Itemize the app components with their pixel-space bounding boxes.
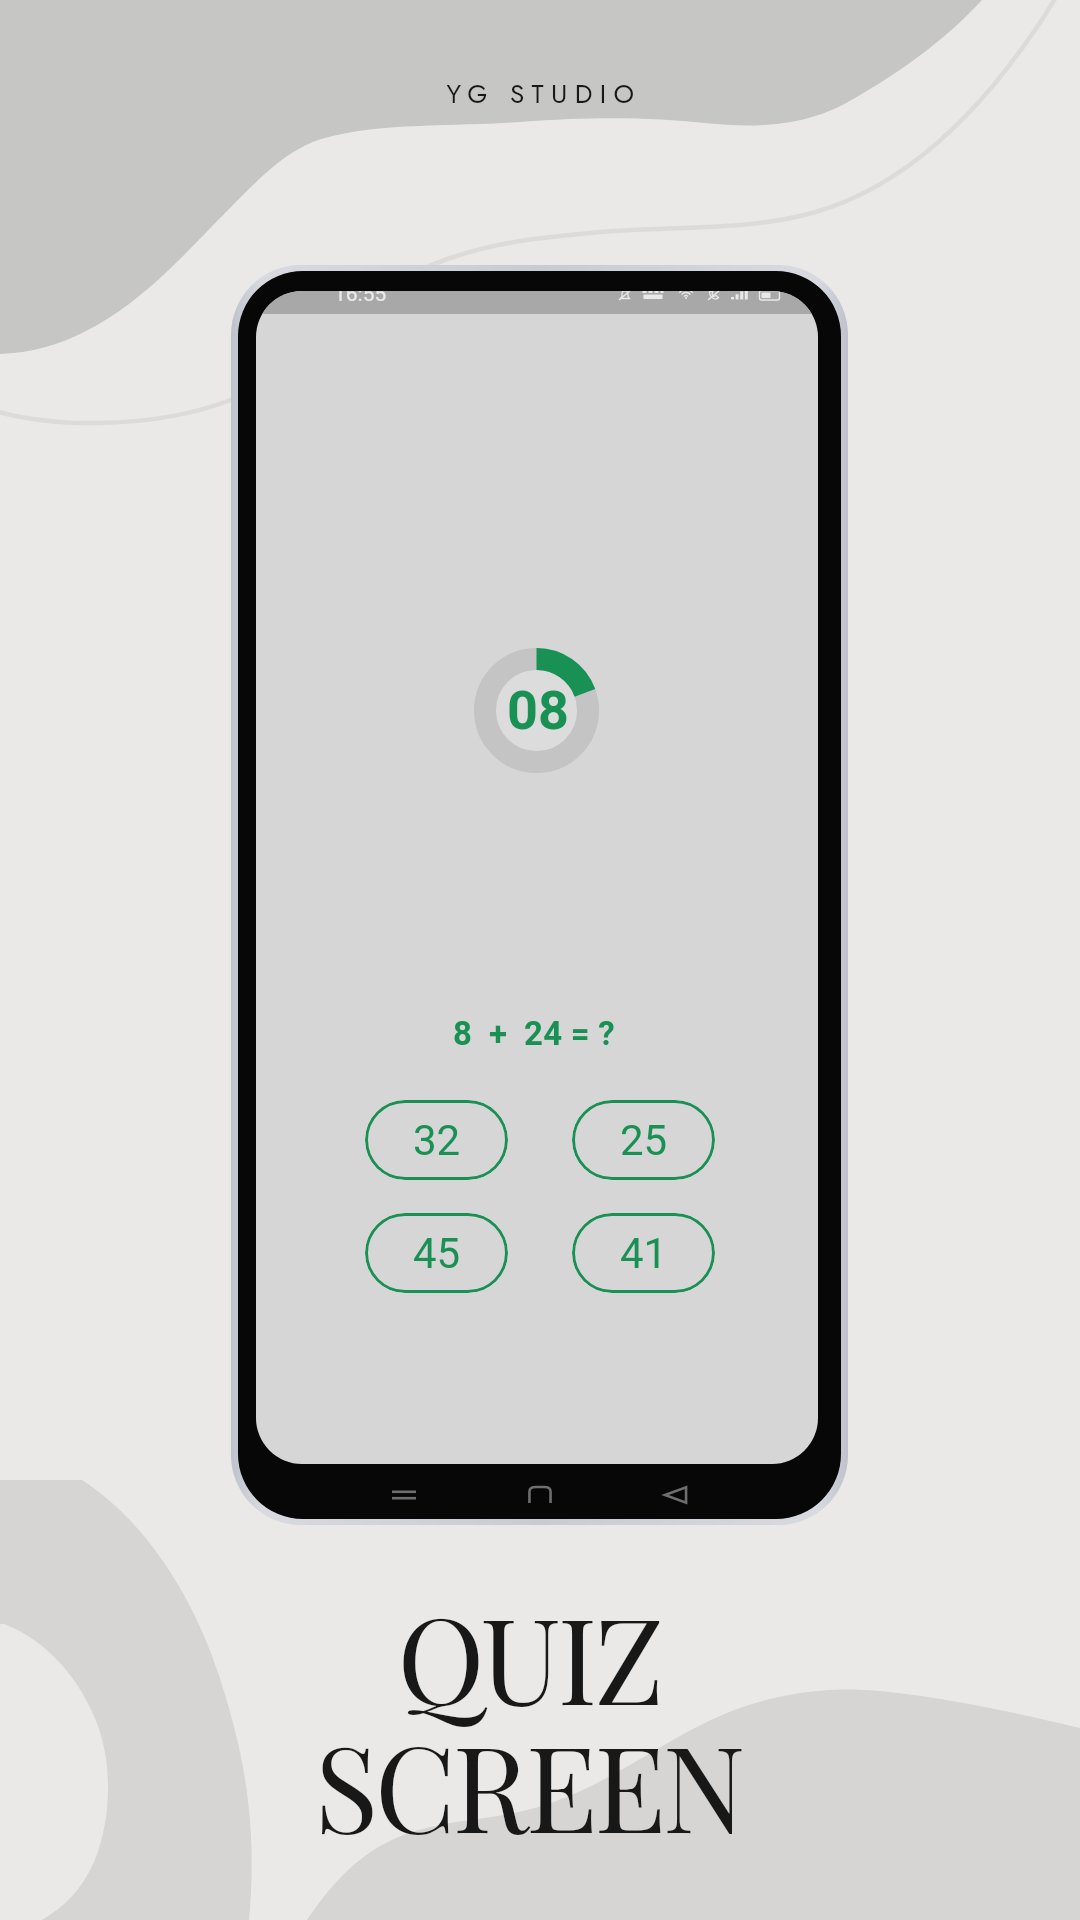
button[interactable]: 45 <box>365 1213 508 1293</box>
staticText: YG STUDIO <box>446 75 642 113</box>
staticText: 45 <box>413 1229 461 1278</box>
staticText: 8 + 24 = ? <box>453 1014 615 1053</box>
staticText: 16:55 <box>334 291 387 305</box>
button[interactable]: Home <box>518 1473 562 1517</box>
staticText: SCREEN <box>314 1705 743 1862</box>
button[interactable]: Recent apps <box>382 1473 426 1517</box>
staticText: 32 <box>413 1116 461 1165</box>
button[interactable]: Back <box>654 1473 698 1517</box>
staticText: QUIZ <box>397 1577 661 1734</box>
button[interactable]: 25 <box>572 1100 715 1180</box>
staticText: 41 <box>620 1229 668 1278</box>
staticText: 08 <box>507 679 569 742</box>
staticText: 25 <box>620 1116 668 1165</box>
button[interactable]: 32 <box>365 1100 508 1180</box>
button[interactable]: 41 <box>572 1213 715 1293</box>
